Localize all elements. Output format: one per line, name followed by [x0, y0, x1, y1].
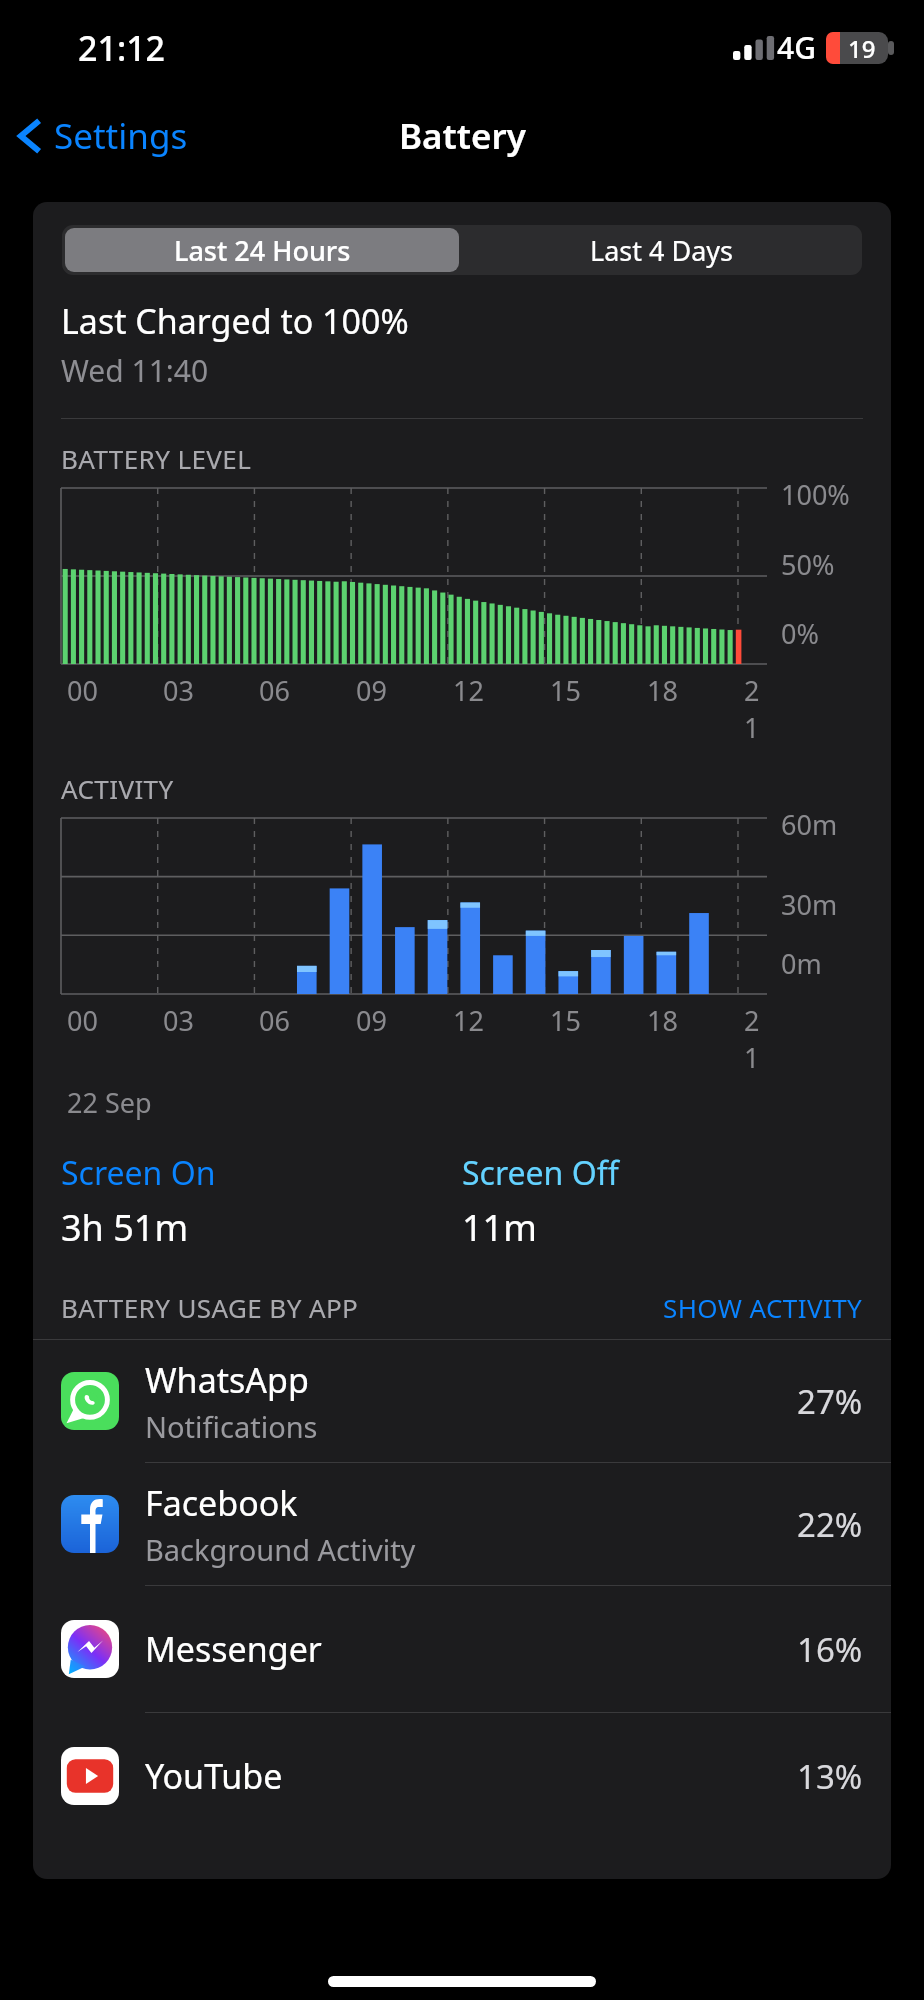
- button[interactable]: SHOW ACTIVITY: [663, 1290, 863, 1325]
- staticText: 00: [67, 1002, 98, 1039]
- button[interactable]: Messenger: [33, 1586, 891, 1713]
- staticText: 03: [163, 672, 194, 709]
- staticText: 21: [744, 672, 767, 746]
- staticText: 09: [356, 1002, 387, 1039]
- staticText: 15: [550, 672, 581, 709]
- staticText: Screen Off: [462, 1151, 619, 1195]
- staticText: Notifications: [145, 1407, 318, 1446]
- staticText: 19: [848, 32, 876, 64]
- staticText: 60m: [781, 806, 838, 843]
- button[interactable]: Last 24 Hours: [65, 228, 459, 272]
- staticText: YouTube: [145, 1753, 283, 1799]
- button[interactable]: Facebook: [33, 1463, 891, 1586]
- staticText: Last 4 Days: [590, 232, 734, 269]
- staticText: Last 24 Hours: [174, 232, 351, 269]
- staticText: 09: [356, 672, 387, 709]
- staticText: 21:12: [78, 25, 166, 71]
- staticText: Settings: [54, 112, 188, 160]
- staticText: 100%: [781, 476, 850, 513]
- button[interactable]: Settings: [0, 104, 200, 168]
- staticText: 06: [259, 1002, 290, 1039]
- staticText: Screen On: [61, 1151, 216, 1195]
- staticText: SHOW ACTIVITY: [663, 1290, 863, 1325]
- staticText: 16%: [797, 1627, 863, 1672]
- staticText: Messenger: [145, 1626, 322, 1672]
- staticText: 18: [647, 1002, 678, 1039]
- staticText: 06: [259, 672, 290, 709]
- staticText: 0m: [781, 945, 822, 982]
- staticText: ACTIVITY: [61, 771, 174, 806]
- staticText: BATTERY LEVEL: [61, 441, 252, 476]
- staticText: 21: [744, 1002, 767, 1076]
- staticText: Last Charged to 100%: [61, 298, 409, 344]
- staticText: 50%: [781, 546, 835, 583]
- staticText: BATTERY USAGE BY APP: [61, 1290, 359, 1325]
- staticText: 12: [453, 1002, 484, 1039]
- button[interactable]: YouTube: [33, 1713, 891, 1839]
- staticText: 18: [647, 672, 678, 709]
- staticText: 0%: [781, 615, 819, 652]
- staticText: 13%: [797, 1754, 863, 1799]
- staticText: WhatsApp: [145, 1357, 309, 1403]
- staticText: 22 Sep: [67, 1084, 152, 1121]
- staticText: 30m: [781, 886, 838, 923]
- staticText: 27%: [797, 1379, 863, 1424]
- staticText: 15: [550, 1002, 581, 1039]
- staticText: 03: [163, 1002, 194, 1039]
- button[interactable]: Last 4 Days: [462, 225, 862, 275]
- staticText: 3h 51m: [61, 1203, 189, 1252]
- staticText: Background Activity: [145, 1530, 416, 1569]
- staticText: 00: [67, 672, 98, 709]
- staticText: Facebook: [145, 1480, 298, 1526]
- staticText: 4G: [777, 27, 816, 68]
- staticText: Wed 11:40: [61, 350, 209, 391]
- button[interactable]: WhatsApp: [33, 1340, 891, 1463]
- staticText: 22%: [797, 1502, 863, 1547]
- staticText: 12: [453, 672, 484, 709]
- staticText: 11m: [462, 1203, 537, 1252]
- staticText: Battery: [399, 112, 526, 160]
